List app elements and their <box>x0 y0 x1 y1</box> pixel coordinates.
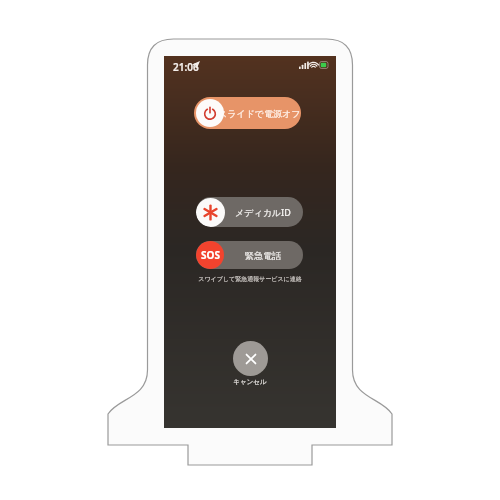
button[interactable]: 緊急電話 <box>196 241 303 269</box>
button[interactable]: メディカルID <box>196 197 303 227</box>
staticText: 緊急電話 <box>245 250 281 261</box>
staticText: キャンセル <box>221 378 279 386</box>
staticText: メディカルID <box>235 206 291 218</box>
button[interactable]: スライドで電源オフ <box>194 97 301 129</box>
staticText: 21:06 <box>173 60 199 74</box>
staticText: スライドで電源オフ <box>218 108 301 119</box>
staticText: SOS <box>201 248 220 262</box>
button[interactable]: キャンセル <box>233 341 268 376</box>
staticText: スワイプして緊急通報サービスに連絡 <box>190 275 310 283</box>
